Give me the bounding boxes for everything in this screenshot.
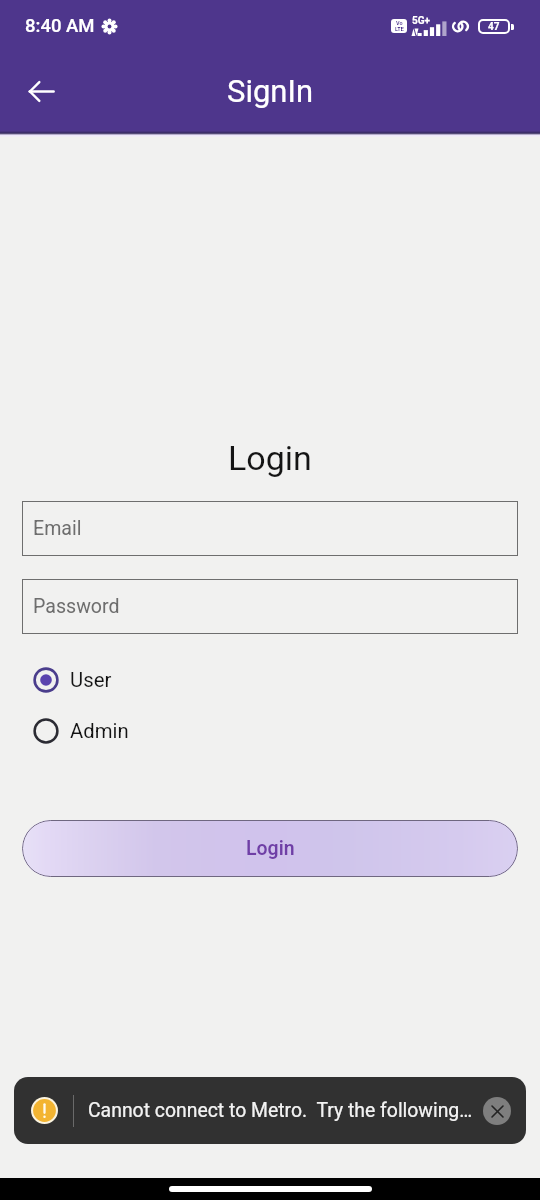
button[interactable]: User <box>31 655 540 705</box>
staticText: Vo <box>396 20 403 26</box>
staticText: Password <box>33 595 120 618</box>
button[interactable]: Admin <box>31 706 540 756</box>
staticText: Admin <box>70 719 129 743</box>
staticText: Login <box>246 837 295 860</box>
staticText: 47 <box>488 21 500 33</box>
staticText: SignIn <box>227 73 314 109</box>
staticText: 8:40 AM <box>25 15 95 37</box>
button[interactable]: Password <box>22 579 518 634</box>
button[interactable]: Login <box>22 820 518 877</box>
button[interactable]: Dismiss <box>483 1097 511 1125</box>
button[interactable]: Email <box>22 501 518 556</box>
staticText: Email <box>33 517 82 540</box>
button[interactable]: Back <box>17 67 65 115</box>
staticText: LTE <box>395 26 404 32</box>
staticText: 5G+ <box>412 15 431 27</box>
staticText: User <box>70 668 112 692</box>
staticText: Cannot connect to Metro. Try the followi… <box>88 1099 477 1122</box>
staticText: Login <box>228 438 312 478</box>
